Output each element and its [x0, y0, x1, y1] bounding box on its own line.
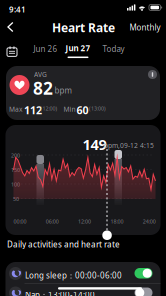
staticText: (12:00)	[40, 105, 57, 112]
staticText: 200	[11, 152, 20, 159]
staticText: Jun 26	[33, 44, 57, 54]
staticText: Nap：13:00-14:00	[25, 289, 95, 296]
staticText: 149	[82, 134, 106, 154]
staticText: Max	[9, 105, 23, 114]
staticText: 150	[11, 166, 20, 174]
staticText: 18:00	[110, 218, 123, 225]
button[interactable]: Calendar	[4, 43, 19, 58]
staticText: bpm	[54, 85, 71, 96]
button[interactable]: Today	[100, 42, 126, 56]
staticText: AVG	[34, 70, 47, 79]
staticText: Monthly	[129, 22, 160, 33]
button[interactable]: Monthly	[127, 20, 162, 35]
staticText: Jun 27	[65, 43, 90, 53]
button[interactable]: Info	[146, 68, 159, 81]
staticText: 50	[13, 195, 19, 203]
staticText: 06:00	[46, 218, 59, 225]
staticText: 24:00	[143, 218, 156, 225]
staticText: 100	[11, 181, 20, 188]
staticText: Min	[63, 105, 75, 114]
staticText: 9:41	[9, 4, 26, 15]
staticText: 112	[24, 103, 42, 117]
button[interactable]: Long sleep：00:00-06:00	[5, 264, 160, 283]
button[interactable]: Time scrubber	[102, 230, 112, 240]
button[interactable]: Jun 27	[65, 43, 90, 58]
staticText: 00:00	[13, 218, 26, 225]
staticText: 60	[76, 103, 88, 117]
staticText: Long sleep：00:00-06:00	[25, 270, 122, 281]
button[interactable]: Back	[3, 18, 18, 35]
button[interactable]: Nap：13:00-14:00	[5, 283, 160, 296]
staticText: 12:00	[78, 218, 91, 225]
button[interactable]: Jun 26	[31, 42, 59, 56]
staticText: Today	[102, 44, 124, 54]
staticText: bpm,09-12 4:15	[104, 141, 154, 150]
staticText: Daily activities and heart rate	[7, 239, 120, 250]
staticText: Heart Rate	[52, 19, 115, 35]
staticText: (13:00)	[89, 105, 106, 112]
staticText: 82	[33, 76, 53, 99]
